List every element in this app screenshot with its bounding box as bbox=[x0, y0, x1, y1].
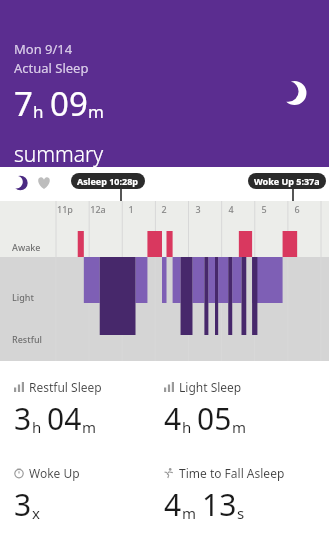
button[interactable]: Mon 9/14 bbox=[0, 0, 329, 167]
staticText: Light bbox=[12, 291, 34, 303]
staticText: h bbox=[33, 100, 44, 123]
staticText: m bbox=[88, 100, 104, 123]
staticText: m bbox=[182, 503, 197, 523]
staticText: 13 bbox=[202, 484, 237, 525]
staticText: 09 bbox=[50, 81, 88, 126]
staticText: 5 bbox=[252, 203, 276, 215]
button[interactable]: Time to Fall Asleep bbox=[164, 465, 314, 525]
staticText: 7 bbox=[14, 81, 33, 126]
staticText: 3 bbox=[186, 203, 210, 215]
button[interactable]: Light Sleep bbox=[164, 379, 314, 439]
staticText: 11p bbox=[53, 203, 77, 215]
staticText: Actual Sleep bbox=[14, 59, 89, 77]
staticText: summary bbox=[14, 140, 104, 167]
staticText: m bbox=[82, 417, 97, 437]
staticText: h bbox=[32, 417, 42, 437]
button[interactable]: Sleep bbox=[0, 167, 329, 365]
button[interactable]: Woke Up bbox=[14, 465, 164, 525]
staticText: Woke Up 5:37a bbox=[254, 175, 320, 187]
staticText: Awake bbox=[12, 241, 41, 253]
staticText: 4 bbox=[164, 484, 182, 525]
staticText: 04 bbox=[47, 398, 82, 439]
staticText: 3 bbox=[14, 398, 32, 439]
staticText: 1 bbox=[119, 203, 143, 215]
staticText: 2 bbox=[152, 203, 176, 215]
staticText: Restful bbox=[12, 333, 42, 345]
button[interactable]: Heart rate bbox=[36, 175, 52, 191]
staticText: Restful Sleep bbox=[29, 379, 102, 395]
staticText: Woke Up bbox=[29, 465, 80, 481]
button[interactable]: Woke Up 5:37a bbox=[248, 173, 326, 189]
staticText: Time to Fall Asleep bbox=[179, 465, 285, 481]
staticText: Asleep 10:28p bbox=[77, 175, 139, 187]
button[interactable]: Restful Sleep bbox=[14, 379, 164, 439]
staticText: 6 bbox=[285, 203, 309, 215]
staticText: 12a bbox=[86, 203, 110, 215]
button[interactable]: Asleep 10:28p bbox=[71, 173, 145, 189]
staticText: h bbox=[182, 417, 192, 437]
other: Night bbox=[281, 80, 307, 106]
staticText: 3 bbox=[14, 484, 32, 525]
staticText: 4 bbox=[164, 398, 182, 439]
staticText: s bbox=[237, 503, 245, 523]
staticText: Light Sleep bbox=[179, 379, 242, 395]
staticText: 4 bbox=[219, 203, 243, 215]
staticText: m bbox=[232, 417, 247, 437]
staticText: 05 bbox=[197, 398, 232, 439]
staticText: Mon 9/14 bbox=[14, 40, 73, 58]
button[interactable]: Sleep bbox=[12, 175, 28, 191]
staticText: x bbox=[32, 503, 40, 523]
